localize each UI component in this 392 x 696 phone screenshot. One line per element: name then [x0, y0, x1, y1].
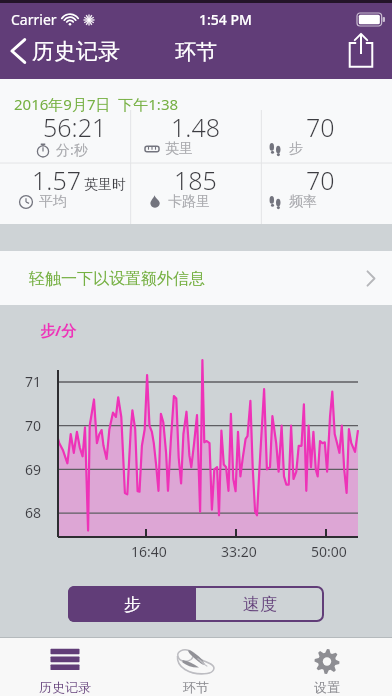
staticText: 2016年9月7日 下午1:38 — [14, 94, 179, 114]
staticText: 英里时 — [84, 176, 126, 194]
staticText: 轻触一下以设置额外信息 — [29, 269, 205, 289]
button[interactable]: 环节 — [130, 638, 261, 696]
staticText: 68 — [25, 503, 42, 522]
staticText: 69 — [25, 460, 42, 479]
staticText: 1.48 — [171, 110, 220, 144]
staticText: 速度 — [243, 594, 277, 615]
staticText: Carrier — [11, 10, 57, 29]
button[interactable]: 轻触一下以设置额外信息 — [0, 251, 392, 305]
staticText: 历史记录 — [39, 679, 91, 695]
staticText: 70 — [306, 163, 335, 197]
staticText: 1.57 — [32, 163, 81, 197]
staticText: 卡路里 — [168, 193, 210, 211]
staticText: 分:秒 — [56, 140, 88, 159]
staticText: 1:54 PM — [199, 10, 252, 29]
staticText: 环节 — [183, 679, 209, 695]
staticText: 英里 — [165, 140, 193, 158]
staticText: 频率 — [289, 193, 317, 211]
button[interactable]: 历史记录 — [0, 36, 128, 69]
staticText: 16:40 — [131, 542, 167, 561]
button[interactable]: 历史记录 — [0, 638, 130, 696]
staticText: 平均 — [39, 193, 67, 211]
staticText: 70 — [306, 110, 335, 144]
staticText: 历史记录 — [32, 38, 120, 66]
staticText: 环节 — [175, 39, 217, 65]
staticText: 33:20 — [221, 542, 257, 561]
button[interactable]: 速度 — [196, 586, 324, 622]
staticText: 56:21 — [43, 110, 107, 144]
button[interactable]: 设置 — [261, 638, 392, 696]
staticText: 50:00 — [311, 542, 347, 561]
staticText: 185 — [174, 163, 217, 197]
staticText: 70 — [25, 416, 42, 435]
staticText: 设置 — [314, 679, 340, 695]
button[interactable]: 步 — [68, 586, 196, 622]
staticText: 步/分 — [40, 320, 77, 340]
staticText: 71 — [25, 372, 42, 391]
button[interactable]: Share — [336, 36, 392, 79]
staticText: 步 — [124, 594, 141, 615]
staticText: 步 — [289, 140, 303, 158]
